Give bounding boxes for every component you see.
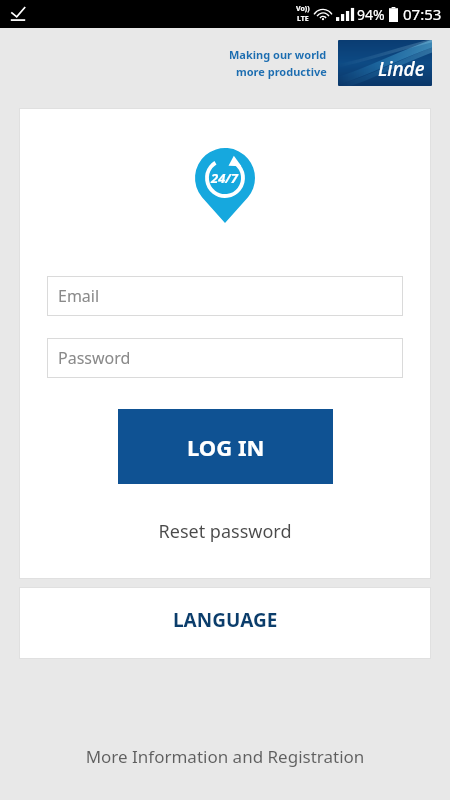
button[interactable]: Reset password [19, 514, 431, 549]
staticText: 24/7 [211, 169, 239, 187]
staticText: Vo)) [296, 4, 310, 14]
staticText: Making our world [229, 47, 327, 62]
staticText: LANGUAGE [173, 607, 278, 633]
staticText: more productive [236, 64, 327, 79]
staticText: Email [58, 285, 100, 307]
staticText: 94% [357, 5, 385, 24]
staticText: LOG IN [187, 432, 265, 462]
button[interactable]: More Information and Registration [0, 741, 450, 772]
other: 24/7 service [195, 148, 255, 223]
staticText: Linde [378, 56, 425, 82]
staticText: 07:53 [403, 4, 442, 24]
staticText: Password [58, 347, 131, 369]
button[interactable]: Linde logo [338, 40, 432, 86]
button[interactable]: LANGUAGE [19, 587, 431, 659]
button[interactable]: LOG IN [118, 409, 333, 484]
staticText: LTE [297, 14, 309, 24]
button[interactable]: Email [47, 276, 403, 316]
button[interactable]: Password [47, 338, 403, 378]
